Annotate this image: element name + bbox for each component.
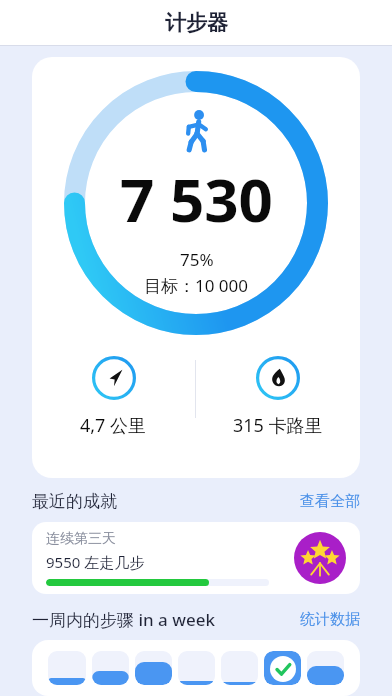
button[interactable]: 连续第三天 [32, 522, 360, 594]
other: Distance [92, 356, 136, 400]
staticText: 315 卡路里 [233, 413, 323, 438]
staticText: 统计数据 [300, 610, 360, 629]
staticText: 75% [180, 248, 214, 271]
staticText: 一周内的步骤 in a week [32, 608, 300, 631]
button[interactable]: 统计数据 [300, 610, 360, 629]
staticText: 7 530 [120, 158, 273, 240]
button[interactable]: Distance [32, 352, 195, 438]
button[interactable]: 查看全部 [300, 492, 360, 511]
button[interactable] [32, 640, 360, 696]
staticText: 9550 左走几步 [46, 552, 145, 572]
other: Calories [256, 356, 300, 400]
staticText: 最近的成就 [32, 491, 300, 512]
staticText: 4,7 公里 [80, 413, 147, 438]
button[interactable]: Calories [196, 352, 360, 438]
staticText: 查看全部 [300, 492, 360, 511]
staticText: 连续第三天 [46, 530, 116, 548]
other: Achievement badge [294, 532, 346, 584]
staticText: 目标：10 000 [144, 274, 249, 297]
staticText: 计步器 [165, 10, 228, 36]
